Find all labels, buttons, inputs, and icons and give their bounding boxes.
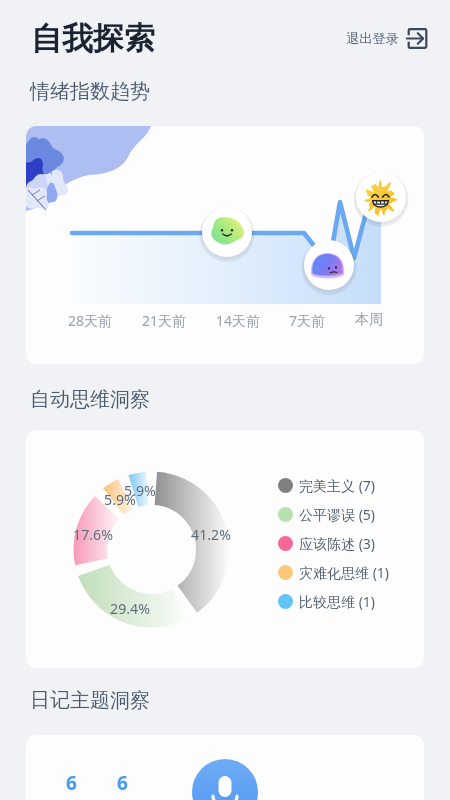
staticText: 公平谬误 (5): [299, 505, 376, 524]
staticText: 41.2%: [171, 525, 251, 544]
staticText: 比较思维 (1): [299, 592, 376, 611]
staticText: 退出登录: [346, 30, 399, 47]
staticText: 6: [66, 770, 77, 796]
button[interactable]: 比较思维 (1): [278, 587, 376, 616]
button[interactable]: 公平谬误 (5): [278, 500, 376, 529]
staticText: 日记主题洞察: [30, 688, 150, 713]
staticText: 应该陈述 (3): [299, 534, 376, 553]
staticText: 5.9%: [80, 490, 160, 509]
staticText: 5.9%: [100, 481, 180, 500]
staticText: 7天前: [289, 311, 326, 330]
button[interactable]: Record voice note: [192, 759, 258, 800]
staticText: 14天前: [216, 311, 261, 330]
button[interactable]: 6: [26, 735, 424, 800]
staticText: 自我探索: [31, 19, 155, 58]
staticText: 自动思维洞察: [30, 387, 150, 412]
staticText: 6: [117, 770, 128, 796]
button[interactable]: 28天前: [26, 126, 424, 364]
button[interactable]: 退出登录: [342, 22, 428, 55]
staticText: 29.4%: [90, 599, 170, 618]
staticText: 本周: [355, 311, 383, 329]
staticText: 灾难化思维 (1): [299, 563, 390, 582]
button[interactable]: 完美主义 (7): [278, 471, 376, 500]
button[interactable]: 应该陈述 (3): [278, 529, 376, 558]
button[interactable]: 灾难化思维 (1): [278, 558, 390, 587]
staticText: 28天前: [68, 311, 113, 330]
staticText: 17.6%: [53, 525, 133, 544]
button[interactable]: 41.2%: [26, 430, 424, 668]
staticText: 情绪指数趋势: [30, 79, 150, 104]
staticText: 完美主义 (7): [299, 476, 376, 495]
staticText: 21天前: [142, 311, 187, 330]
